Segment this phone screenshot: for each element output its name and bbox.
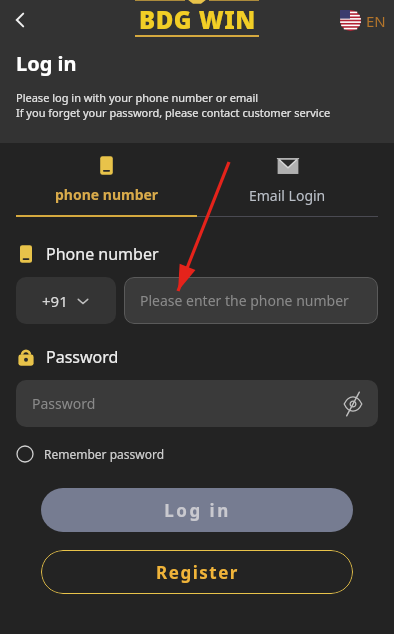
button[interactable]: Email Login <box>197 143 378 217</box>
button[interactable]: Back <box>4 4 36 36</box>
button[interactable]: Password <box>16 380 378 427</box>
button[interactable]: phone number <box>16 143 197 217</box>
button[interactable]: Show password <box>340 391 366 417</box>
button[interactable]: +91 <box>16 277 116 324</box>
staticText: Log in <box>164 499 231 522</box>
button[interactable]: Log in <box>41 488 353 532</box>
staticText: Please log in with your phone number or … <box>16 90 259 105</box>
staticText: Please enter the phone number <box>140 291 349 310</box>
staticText: BDG WIN <box>139 3 256 36</box>
staticText: EN <box>366 11 386 31</box>
staticText: Log in <box>16 50 77 77</box>
staticText: +91 <box>42 291 68 311</box>
button[interactable]: EN <box>340 10 386 31</box>
staticText: Phone number <box>46 243 159 265</box>
staticText: Remember password <box>44 446 165 462</box>
staticText: phone number <box>55 185 159 204</box>
staticText: Password <box>46 346 119 368</box>
staticText: Password <box>32 394 96 413</box>
button[interactable]: Register <box>41 550 353 594</box>
staticText: If you forget your password, please cont… <box>16 105 331 120</box>
button[interactable]: Remember password <box>16 445 165 463</box>
button[interactable]: Please enter the phone number <box>124 277 378 324</box>
staticText: Email Login <box>249 186 326 205</box>
staticText: Register <box>156 561 239 584</box>
